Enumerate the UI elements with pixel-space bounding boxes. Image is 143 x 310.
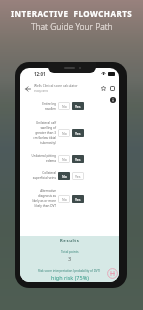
staticText: 3 [68,255,72,262]
staticText: Yes [75,104,81,109]
button[interactable]: Yes [72,155,84,163]
button[interactable]: Logo [107,268,118,279]
staticText: Entire leg swollen [20,102,56,111]
button[interactable]: Back [23,84,32,93]
staticText: No [62,104,67,109]
staticText: That Guide Your Path [31,21,113,33]
staticText: No [62,174,67,179]
staticText: Risk score interpretation (probability o… [38,269,101,273]
staticText: Yes [75,157,81,162]
staticText: Alternative diagnosis as likely as or mo… [20,189,56,208]
button[interactable]: No [58,172,70,180]
staticText: Total points [61,250,79,254]
button[interactable]: Bookmark [99,84,107,92]
button[interactable]: No [58,102,70,110]
staticText: Collateral superficial veins [20,171,56,180]
staticText: essay.varns [34,89,49,93]
button[interactable]: Yes [72,102,84,110]
button[interactable]: No [58,129,70,137]
button[interactable]: Yes [72,195,84,203]
staticText: Unilateral pitting edema [20,154,56,163]
staticText: No [62,131,67,136]
button[interactable]: Info [110,97,116,103]
button[interactable]: Tabs [108,84,116,92]
staticText: Wells Clinical score calculator [34,84,78,88]
button[interactable]: Yes [72,129,84,137]
staticText: Unilateral calf swelling of greater than… [20,121,56,145]
button[interactable]: Yes [72,172,84,180]
staticText: Yes [75,197,81,202]
staticText: high risk (75%) [51,274,89,281]
staticText: INTERACTIVE FLOWCHARTS [11,8,133,19]
button[interactable]: No [58,155,70,163]
staticText: 12:01 [34,71,46,77]
button[interactable]: No [58,195,70,203]
staticText: Yes [75,131,81,136]
staticText: No [62,157,67,162]
staticText: Results [60,238,80,244]
staticText: No [62,197,67,202]
staticText: Yes [75,174,81,179]
